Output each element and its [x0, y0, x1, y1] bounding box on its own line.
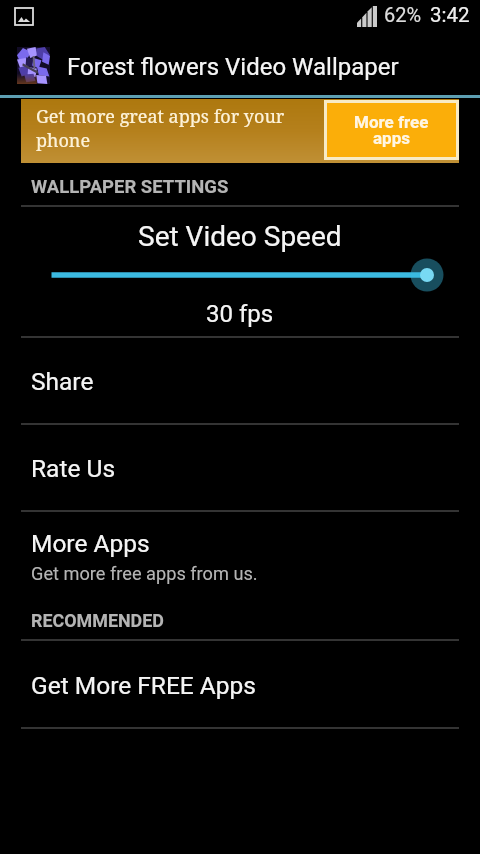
- staticText: 3:42: [430, 3, 470, 27]
- button[interactable]: Video speed slider: [0, 255, 480, 295]
- button[interactable]: Get more great apps for your phone: [21, 99, 459, 163]
- staticText: RECOMMENDED: [31, 610, 164, 631]
- button[interactable]: Share: [0, 359, 480, 403]
- button[interactable]: More Apps: [0, 521, 480, 565]
- staticText: Rate Us: [31, 454, 116, 483]
- staticText: Get More FREE Apps: [31, 671, 256, 700]
- staticText: More free: [354, 112, 429, 132]
- staticText: More Apps: [31, 529, 150, 558]
- staticText: 62%: [384, 3, 422, 26]
- staticText: Get more great apps for your phone: [36, 104, 326, 152]
- button[interactable]: Get More FREE Apps: [0, 663, 480, 707]
- staticText: 30 fps: [206, 300, 274, 328]
- button[interactable]: Rate Us: [0, 446, 480, 490]
- staticText: apps: [373, 128, 411, 148]
- staticText: Set Video Speed: [138, 220, 342, 253]
- staticText: Get more free apps from us.: [31, 563, 258, 584]
- button[interactable]: More free: [327, 103, 456, 157]
- other: Image notification: [15, 8, 33, 25]
- staticText: WALLPAPER SETTINGS: [31, 176, 229, 198]
- staticText: Share: [31, 367, 94, 396]
- staticText: Forest flowers Video Wallpaper: [67, 53, 399, 81]
